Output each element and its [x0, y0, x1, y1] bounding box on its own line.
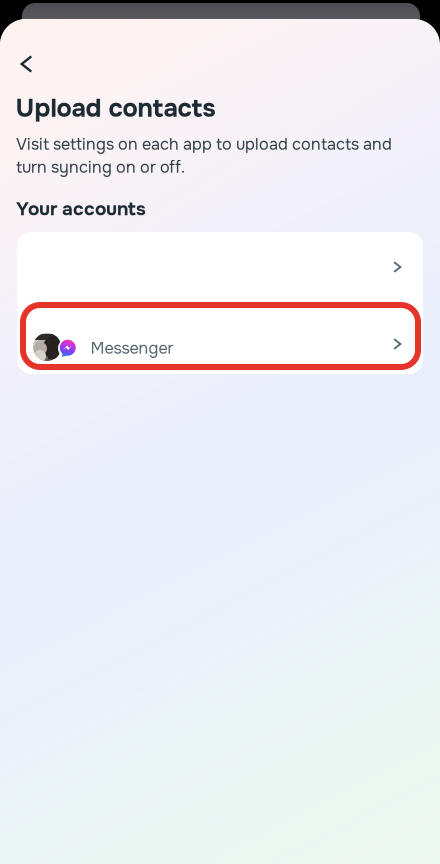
button[interactable]: Messenger — [17, 303, 423, 374]
staticText: Messenger — [90, 338, 173, 359]
button[interactable]: Back — [4, 42, 48, 86]
button[interactable]: Account — [17, 232, 423, 303]
staticText: Upload contacts — [15, 92, 215, 124]
staticText: turn syncing on or off. — [16, 157, 185, 178]
staticText: Your accounts — [16, 197, 146, 221]
staticText: Visit settings on each app to upload con… — [16, 134, 392, 155]
